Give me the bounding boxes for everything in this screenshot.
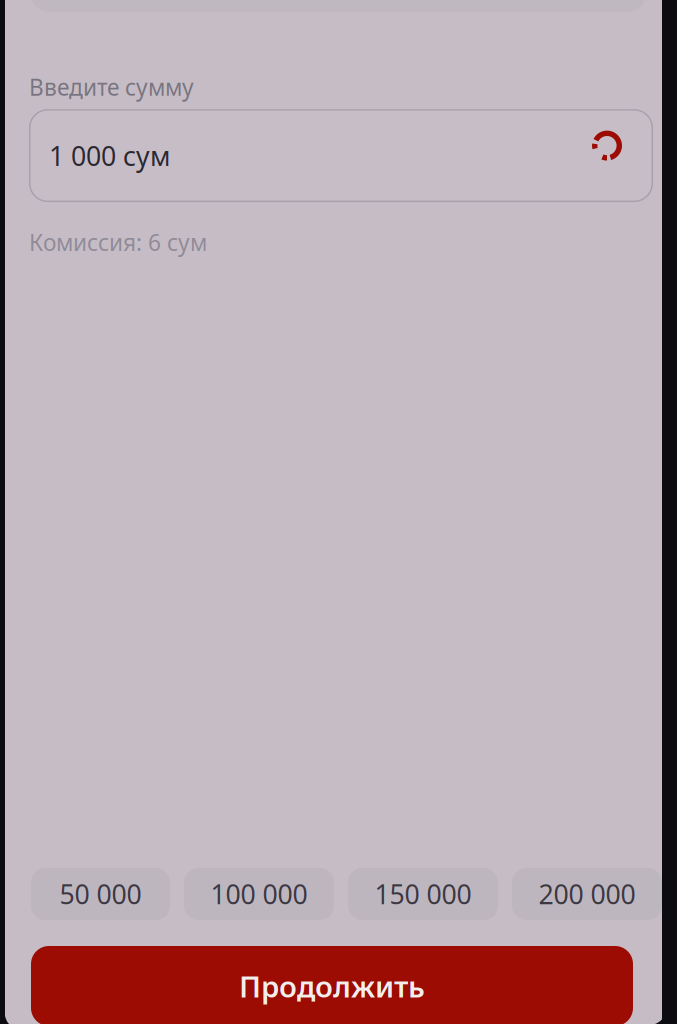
button[interactable]: 150 000 xyxy=(348,868,498,920)
button[interactable]: 50 000 xyxy=(31,868,170,920)
staticText: Комиссия: 6 сум xyxy=(29,227,207,257)
staticText: 50 000 xyxy=(59,876,141,912)
staticText: 100 000 xyxy=(210,876,307,912)
button[interactable]: 200 000 xyxy=(512,868,662,920)
staticText: 150 000 xyxy=(374,876,471,912)
button[interactable]: Продолжить xyxy=(31,946,633,1024)
button[interactable]: Очистить сумму xyxy=(590,139,624,173)
staticText: 200 000 xyxy=(538,876,635,912)
staticText: Введите сумму xyxy=(29,72,194,102)
staticText: 1 000 сум xyxy=(49,138,170,173)
staticText: Продолжить xyxy=(239,966,425,1005)
button[interactable]: 100 000 xyxy=(184,868,334,920)
